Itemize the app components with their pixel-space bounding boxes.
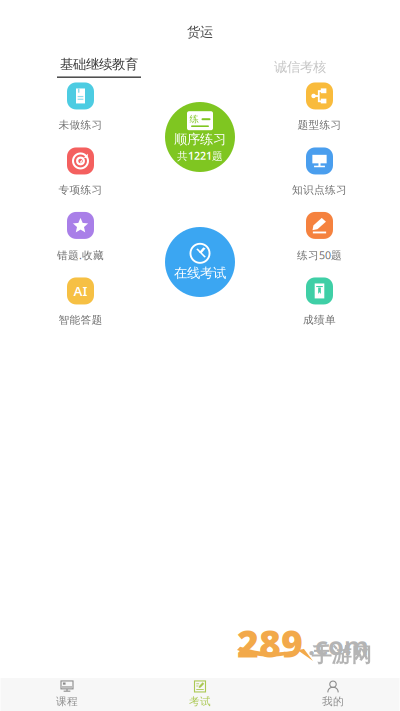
staticText: 知识点练习 [292, 183, 347, 196]
button[interactable]: 专项练习 [0, 149, 161, 195]
staticText: 在线考试 [174, 265, 226, 281]
staticText: 共1221题 [177, 149, 223, 163]
button[interactable]: AI [0, 279, 161, 325]
staticText: 课程 [56, 695, 78, 708]
button[interactable]: 考试 [133, 678, 266, 711]
staticText: 未做练习 [58, 118, 102, 131]
button[interactable]: 成绩单 [239, 279, 400, 325]
button[interactable]: 诚信考核 [240, 55, 360, 79]
staticText: 练 [189, 113, 198, 125]
staticText: 专项练习 [58, 183, 102, 196]
staticText: 成绩单 [303, 313, 336, 326]
staticText: 练习50题 [297, 248, 342, 262]
staticText: 考试 [189, 695, 211, 708]
staticText: 我的 [322, 695, 344, 708]
button[interactable]: 课程 [0, 678, 133, 711]
staticText: .com [308, 629, 369, 662]
staticText: 错题.收藏 [57, 248, 104, 262]
button[interactable]: 未做练习 [0, 84, 161, 130]
staticText: 289 [237, 618, 303, 668]
staticText: 基础继续教育 [60, 56, 138, 72]
button[interactable]: 我的 [266, 678, 399, 711]
staticText: 手游网 [311, 643, 371, 667]
button[interactable]: 练习50题 [239, 214, 400, 260]
staticText: 智能答题 [58, 313, 102, 326]
button[interactable]: 题型练习 [239, 84, 400, 130]
button[interactable]: 练 [161, 98, 239, 176]
staticText: 货运 [187, 24, 213, 40]
staticText: AI [73, 282, 87, 300]
button[interactable]: 错题.收藏 [0, 214, 161, 260]
staticText: 题型练习 [297, 118, 341, 131]
button[interactable]: 基础继续教育 [39, 55, 159, 79]
button[interactable]: 在线考试 [161, 223, 239, 301]
button[interactable]: 知识点练习 [239, 149, 400, 195]
staticText: 诚信考核 [274, 59, 326, 75]
staticText: 顺序练习 [174, 131, 226, 148]
